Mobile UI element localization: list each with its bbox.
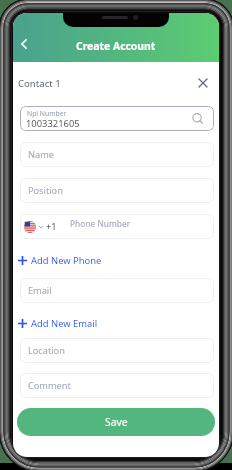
staticText: 1003321605 (26, 117, 80, 130)
staticText: Location (28, 344, 65, 357)
button[interactable]: Add New Email (18, 316, 98, 331)
button[interactable]: Position (20, 178, 214, 203)
button[interactable]: +1 (20, 214, 214, 239)
staticText: Position (28, 184, 63, 197)
button[interactable]: Add New Phone (18, 253, 102, 268)
button[interactable]: Npi Number (20, 106, 214, 131)
button[interactable]: Back (13, 33, 34, 54)
button[interactable]: Comment (20, 373, 214, 398)
staticText: Add New Email (31, 317, 98, 330)
button[interactable]: Location (20, 338, 214, 363)
staticText: Phone Number (70, 218, 131, 229)
button[interactable]: Email (20, 278, 214, 303)
button[interactable]: Search (190, 111, 206, 127)
button[interactable]: Save (17, 408, 215, 436)
staticText: Email (28, 284, 52, 297)
staticText: Add New Phone (31, 254, 102, 267)
staticText: Create Account (76, 39, 156, 53)
staticText: Npi Number (27, 109, 67, 118)
button[interactable]: Close (192, 72, 213, 93)
staticText: Comment (28, 379, 71, 392)
staticText: Save (105, 415, 128, 429)
button[interactable]: Contact 1 (18, 77, 61, 90)
staticText: +1 (46, 220, 57, 233)
staticText: Name (28, 148, 54, 161)
button[interactable]: Name (20, 142, 214, 167)
